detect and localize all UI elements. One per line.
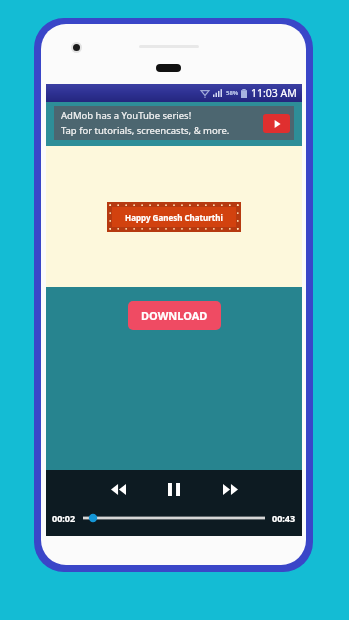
button[interactable]: Rewind [101,472,135,506]
button[interactable]: Fast forward [213,472,247,506]
button[interactable]: Pause [157,472,191,506]
button[interactable]: Happy Ganesh Chaturthi [107,202,241,232]
staticText: AdMob has a YouTube series! [61,109,192,122]
button[interactable]: DOWNLOAD [128,301,221,330]
staticText: 11:03 AM [251,86,297,100]
staticText: DOWNLOAD [141,308,208,323]
staticText: 58% [226,89,239,97]
staticText: Happy Ganesh Chaturthi [125,212,223,223]
staticText: 00:43 [272,512,296,524]
staticText: Tap for tutorials, screencasts, & more. [61,124,230,137]
button[interactable]: AdMob has a YouTube series! [46,102,302,146]
button[interactable]: Play YouTube video [263,114,290,133]
staticText: 00:02 [52,512,76,524]
button[interactable]: Seek bar [83,511,265,525]
